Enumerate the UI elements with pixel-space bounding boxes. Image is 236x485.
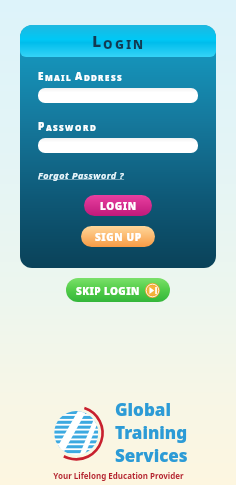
staticText: SIGN UP [95, 230, 142, 244]
staticText: L [66, 72, 72, 83]
staticText: Global [115, 398, 171, 421]
staticText: I [126, 36, 133, 52]
staticText: P [38, 119, 46, 133]
staticText: Training [115, 421, 188, 444]
button[interactable]: SKIP LOGIN [66, 278, 170, 302]
staticText: Your Lifelong Education Provider [53, 470, 184, 481]
staticText: R [98, 72, 105, 83]
staticText: A [46, 122, 53, 133]
button[interactable] [38, 88, 198, 103]
staticText: A [75, 69, 84, 83]
staticText: R [83, 122, 90, 133]
staticText: SKIP LOGIN [76, 284, 140, 298]
staticText: A [54, 72, 61, 83]
staticText: L [92, 30, 103, 52]
staticText: E [105, 72, 111, 83]
staticText: D [84, 72, 91, 83]
staticText: D [91, 72, 98, 83]
button[interactable] [38, 138, 198, 153]
staticText: M [45, 72, 54, 83]
staticText: Forgot Password ? [38, 169, 125, 181]
staticText: E [38, 69, 45, 83]
staticText: G [115, 36, 126, 52]
staticText: I [61, 72, 66, 83]
staticText: O [75, 122, 83, 133]
button[interactable]: Forgot Password ? [38, 167, 125, 183]
staticText: S [59, 122, 65, 133]
staticText: LOGIN [100, 199, 137, 213]
button[interactable]: SIGN UP [81, 226, 155, 247]
staticText: W [65, 122, 75, 133]
staticText: D [90, 122, 97, 133]
staticText: Services [115, 444, 188, 467]
staticText: S [111, 72, 117, 83]
staticText: S [117, 72, 123, 83]
staticText: N [133, 36, 145, 52]
button[interactable]: LOGIN [84, 195, 152, 216]
staticText: S [53, 122, 59, 133]
staticText: O [103, 36, 115, 52]
other: Skip [145, 283, 160, 298]
